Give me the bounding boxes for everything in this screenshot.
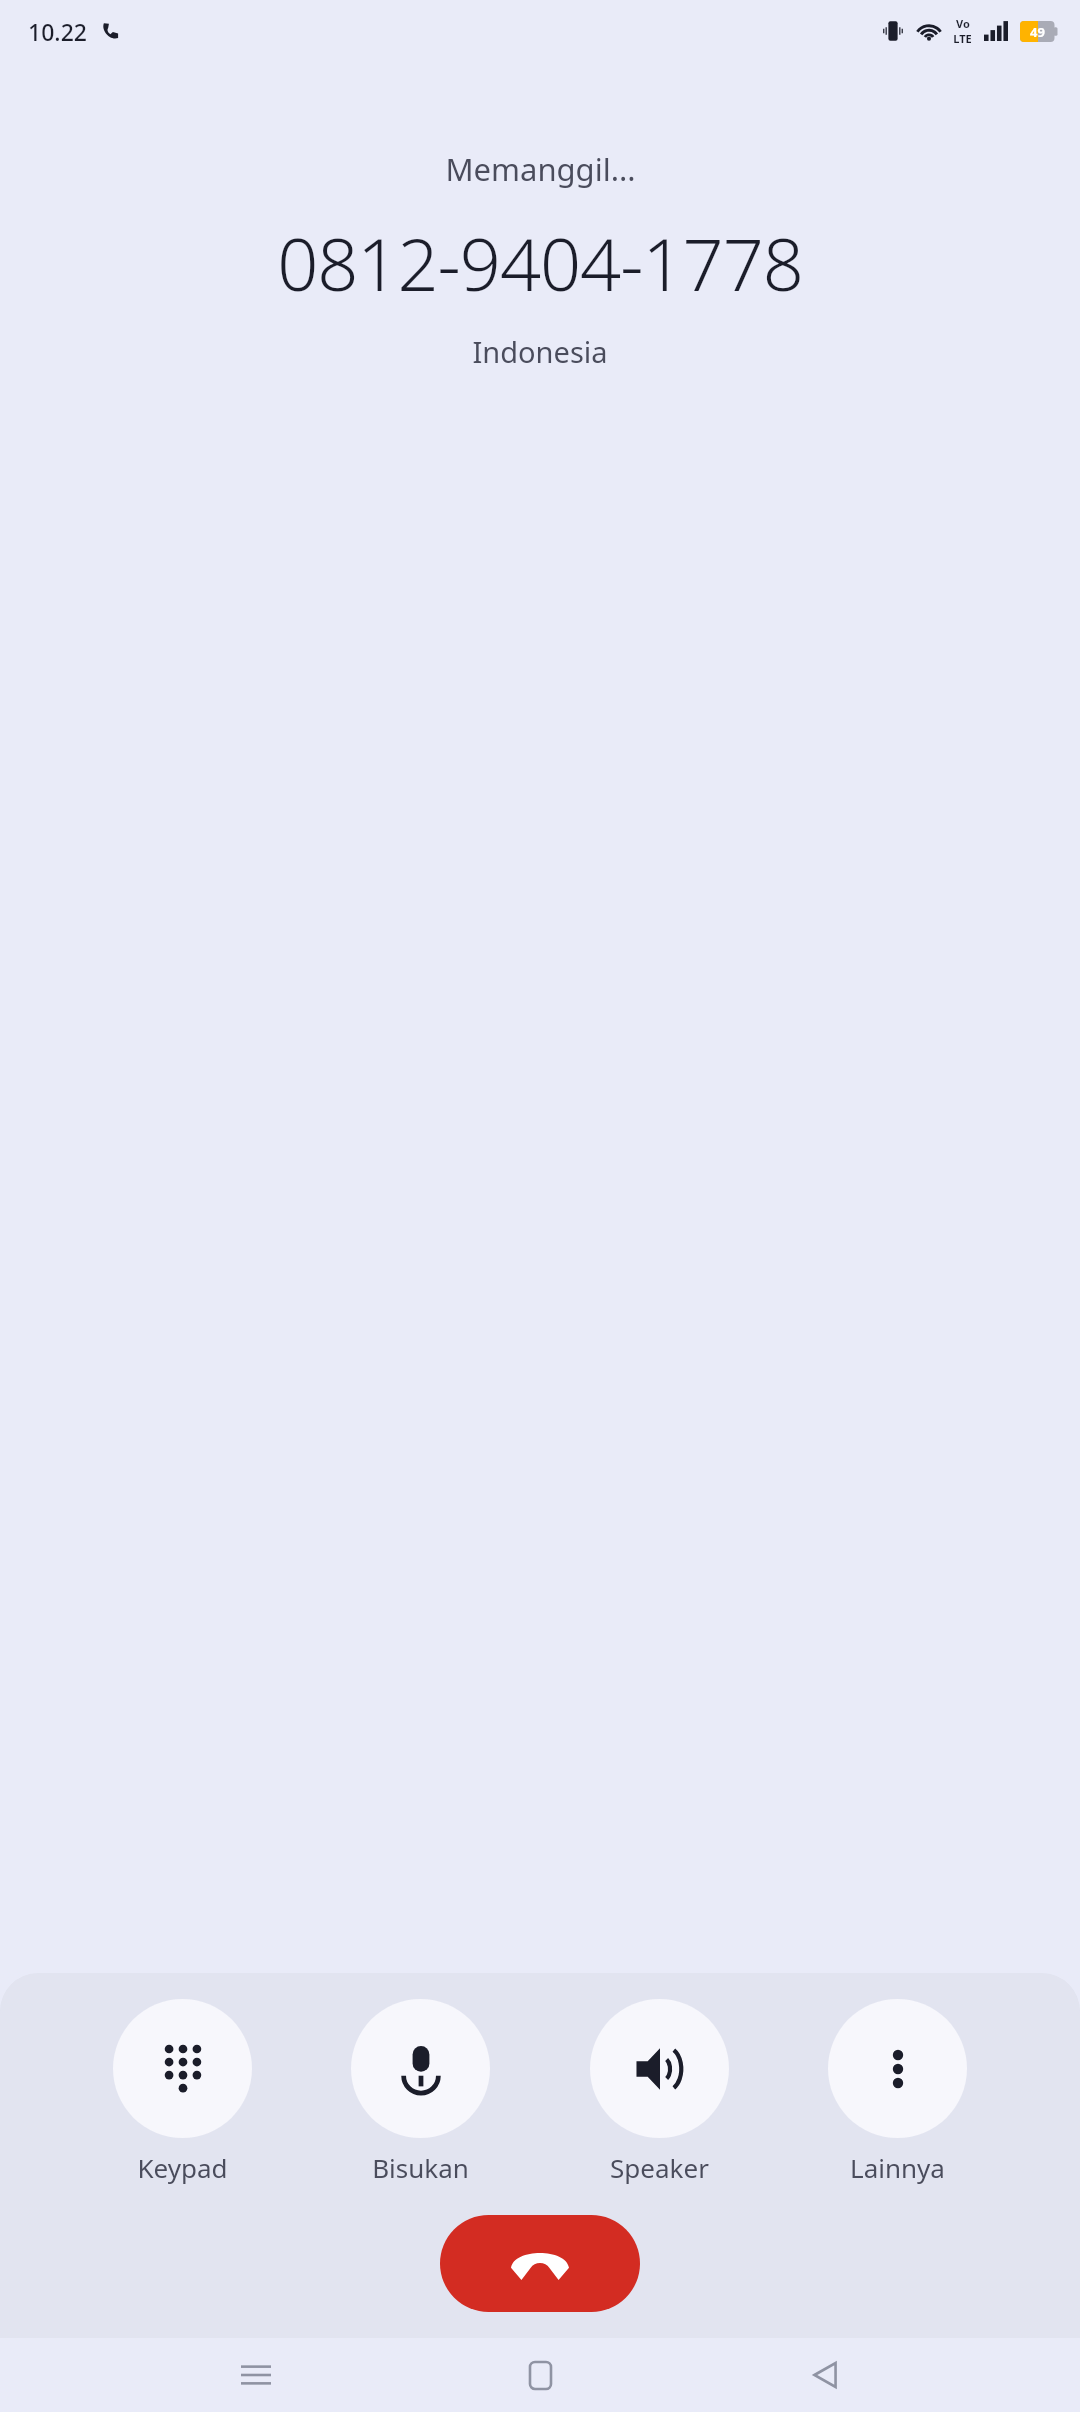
- button[interactable]: Lainnya: [828, 1999, 967, 2185]
- staticText: Speaker: [610, 2150, 709, 2185]
- button[interactable]: Back: [796, 2346, 854, 2404]
- staticText: LTE: [953, 31, 972, 46]
- staticText: 49: [1030, 23, 1045, 41]
- button[interactable]: End call: [440, 2215, 640, 2312]
- staticText: 0812-9404-1778: [277, 214, 803, 312]
- staticText: Indonesia: [472, 332, 608, 371]
- button[interactable]: Keypad: [113, 1999, 252, 2185]
- staticText: Bisukan: [372, 2150, 469, 2185]
- button[interactable]: Home: [511, 2346, 569, 2404]
- staticText: Memanggil...: [445, 148, 636, 190]
- button[interactable]: Recents: [227, 2346, 285, 2404]
- staticText: Vo: [956, 16, 970, 31]
- staticText: 10.22: [28, 16, 87, 47]
- button[interactable]: Bisukan: [351, 1999, 490, 2185]
- staticText: Lainnya: [850, 2150, 945, 2185]
- staticText: Keypad: [137, 2150, 228, 2185]
- button[interactable]: Speaker: [590, 1999, 729, 2185]
